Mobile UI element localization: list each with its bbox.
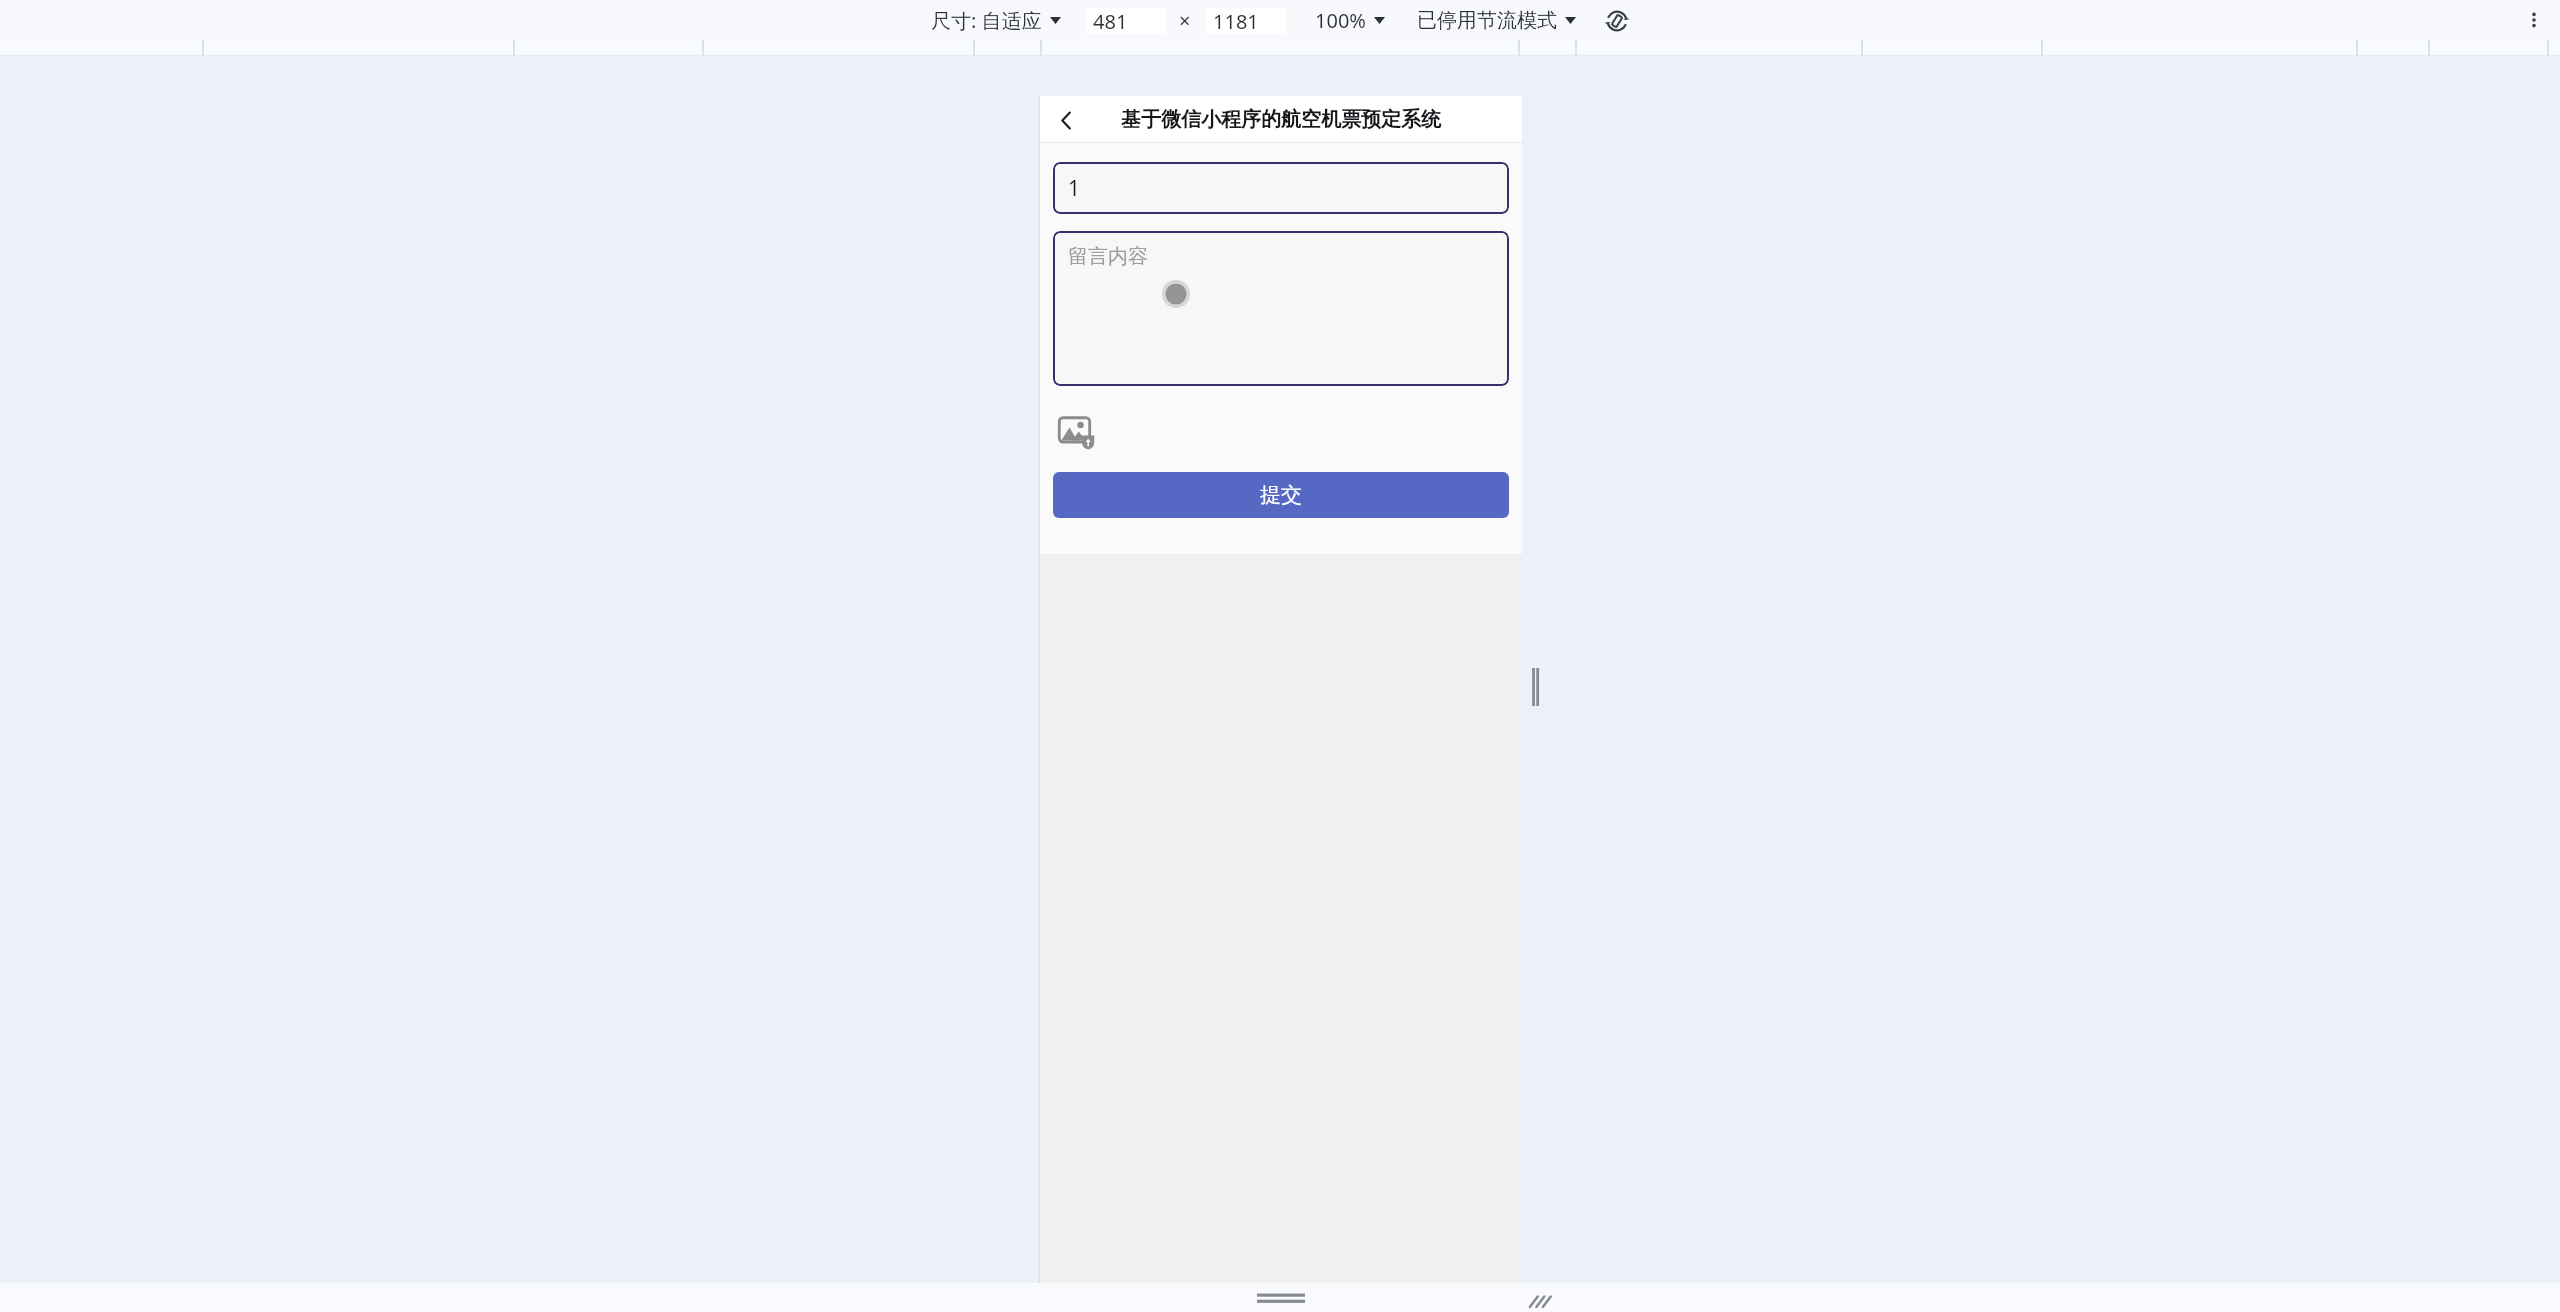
button[interactable]: Resize height bbox=[1257, 1291, 1305, 1305]
button[interactable]: 1181 bbox=[1205, 8, 1285, 34]
button[interactable]: 100% bbox=[1311, 2, 1389, 39]
staticText: 1181 bbox=[1213, 8, 1259, 34]
staticText: 提交 bbox=[1260, 482, 1302, 508]
staticText: 基于微信小程序的航空机票预定系统 bbox=[1121, 107, 1441, 132]
button[interactable]: Upload image bbox=[1053, 408, 1099, 454]
button[interactable]: 481 bbox=[1085, 8, 1165, 34]
button[interactable]: 1 bbox=[1053, 162, 1509, 214]
staticText: 481 bbox=[1093, 8, 1128, 34]
button[interactable]: Resize bbox=[1525, 1289, 1547, 1311]
staticText: 1 bbox=[1068, 174, 1081, 203]
staticText: 留言内容 bbox=[1068, 244, 1148, 269]
button[interactable]: Resize width bbox=[1527, 668, 1543, 706]
button[interactable]: 尺寸: 自适应 bbox=[927, 2, 1065, 39]
staticText: 100% bbox=[1315, 7, 1366, 34]
staticText: × bbox=[1179, 7, 1191, 34]
button[interactable]: More options bbox=[2516, 2, 2552, 38]
button[interactable]: Back bbox=[1046, 100, 1086, 140]
button[interactable]: 已停用节流模式 bbox=[1413, 3, 1580, 38]
staticText: 已停用节流模式 bbox=[1417, 8, 1557, 33]
button[interactable]: Rotate device bbox=[1600, 4, 1634, 38]
button[interactable]: 留言内容 bbox=[1053, 231, 1509, 386]
staticText: 尺寸: 自适应 bbox=[931, 7, 1042, 34]
button[interactable]: 提交 bbox=[1053, 472, 1509, 518]
